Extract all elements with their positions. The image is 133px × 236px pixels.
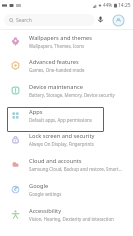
staticText: Cloud and accounts [29, 157, 82, 165]
staticText: Lock screen and security [29, 132, 95, 140]
staticText: Always On Display, Fingerprints [29, 141, 94, 147]
staticText: Search [16, 17, 32, 24]
staticText: 44% [103, 2, 113, 8]
button[interactable]: Search [4, 14, 95, 26]
staticText: Device maintenance [29, 83, 83, 91]
staticText: Google settings [29, 191, 62, 197]
staticText: Apps [29, 108, 43, 116]
button[interactable]: Account [112, 14, 125, 27]
button[interactable]: Wallpapers and themes [0, 29, 133, 54]
button[interactable]: Lock screen and security [0, 127, 133, 152]
button[interactable]: Advanced features [0, 53, 133, 78]
button[interactable]: Accessibility [0, 202, 133, 227]
staticText: Wallpapers and themes [29, 34, 92, 42]
staticText: Samsung Cloud, Backup and restore, Smart… [29, 166, 122, 172]
staticText: 14:25 [118, 2, 131, 9]
button[interactable]: Device maintenance [0, 78, 133, 103]
button[interactable]: Voice search [95, 14, 106, 25]
button[interactable]: Google [0, 177, 133, 202]
staticText: Google [29, 182, 49, 190]
staticText: Accessibility [29, 207, 62, 215]
staticText: Battery, Storage, Memory, Device securit… [29, 92, 115, 98]
button[interactable]: Apps [0, 103, 133, 128]
staticText: Wallpapers, Themes, Icons [29, 43, 85, 49]
staticText: Vision, Hearing, Dexterity and interacti… [29, 216, 114, 222]
staticText: Advanced features [29, 58, 79, 66]
staticText: Games, One-handed mode [29, 67, 85, 73]
staticText: Default apps, App permissions [29, 117, 92, 123]
button[interactable]: Cloud and accounts [0, 152, 133, 177]
